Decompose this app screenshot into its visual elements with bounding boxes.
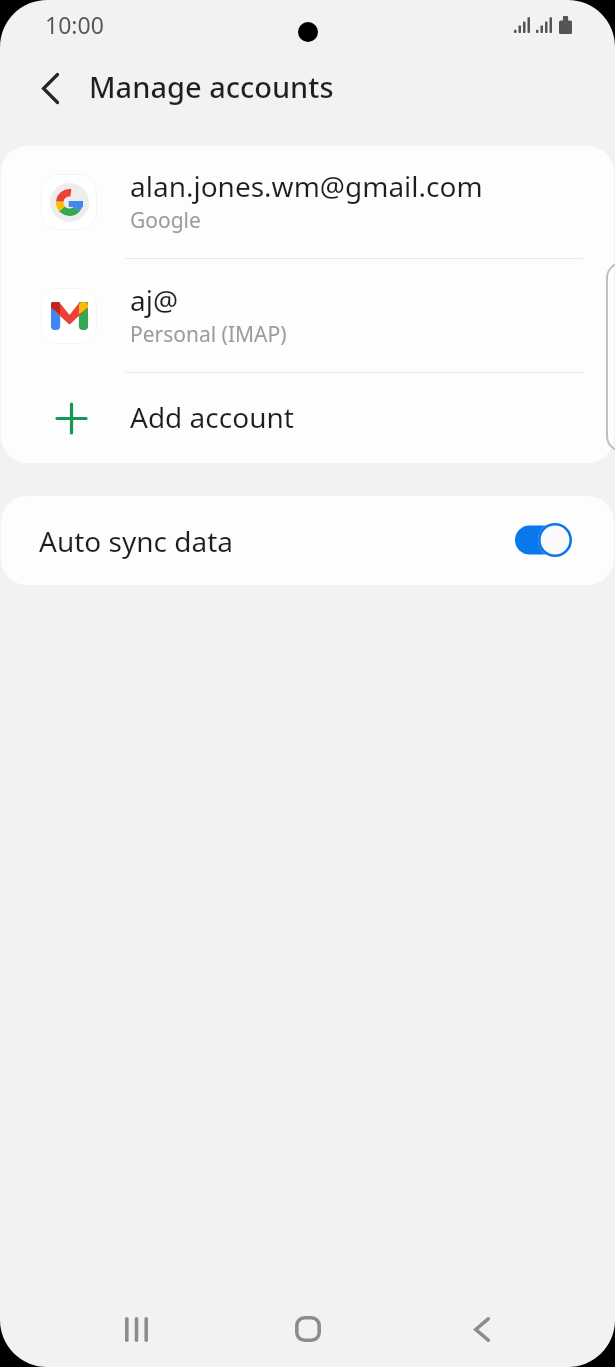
staticText: Manage accounts: [89, 67, 334, 106]
button[interactable]: Navigate up: [26, 64, 74, 112]
staticText: 10:00: [45, 9, 104, 40]
staticText: aj@: [130, 281, 179, 319]
button[interactable]: Auto sync data: [1, 496, 614, 585]
button[interactable]: Back: [450, 1297, 514, 1361]
button[interactable]: Add account: [1, 373, 614, 463]
staticText: Google: [130, 206, 201, 235]
staticText: Personal (IMAP): [130, 320, 287, 349]
staticText: Add account: [130, 398, 294, 436]
staticText: Auto sync data: [39, 522, 233, 560]
button[interactable]: aj@: [1, 259, 614, 373]
button[interactable]: alan.jones.wm@gmail.com: [1, 146, 614, 259]
button[interactable]: Recent apps: [104, 1297, 168, 1361]
button[interactable]: Home: [276, 1297, 340, 1361]
staticText: alan.jones.wm@gmail.com: [130, 167, 483, 205]
